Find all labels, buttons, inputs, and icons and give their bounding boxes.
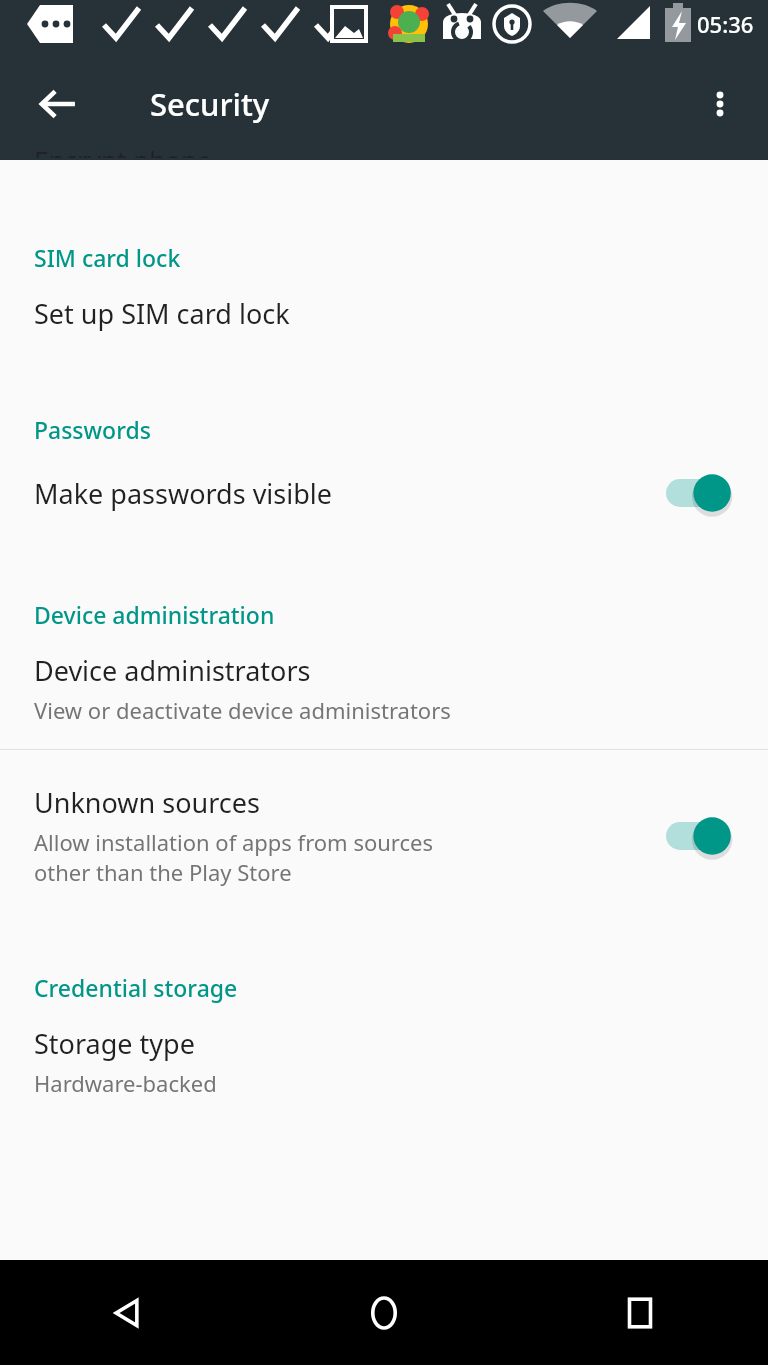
staticText: Storage type [34, 1025, 195, 1062]
button[interactable]: Unknown sources [0, 750, 768, 920]
button[interactable]: Toggle on [666, 469, 740, 517]
button[interactable]: Toggle on [666, 812, 740, 860]
staticText: 05:36 [697, 9, 754, 39]
button[interactable]: Back [0, 1260, 256, 1365]
staticText: Allow installation of apps from sources … [34, 827, 433, 888]
staticText: SIM card lock [34, 242, 768, 273]
button[interactable]: Device administrators [0, 630, 768, 749]
staticText: Security [150, 83, 270, 125]
button[interactable]: Make passwords visible [0, 445, 768, 547]
button[interactable]: Set up SIM card lock [0, 273, 768, 358]
staticText: Make passwords visible [34, 475, 333, 512]
staticText: Device administrators [34, 652, 311, 689]
staticText: Device administration [34, 599, 768, 630]
button[interactable]: Home [256, 1260, 512, 1365]
staticText: View or deactivate device administrators [34, 695, 451, 725]
button[interactable]: Recent apps [512, 1260, 768, 1365]
staticText: Hardware-backed [34, 1068, 217, 1098]
staticText: Set up SIM card lock [34, 295, 290, 332]
staticText: Passwords [34, 414, 768, 445]
button[interactable]: Back [20, 66, 96, 142]
staticText: Encrypt phone [34, 142, 212, 158]
button[interactable]: Storage type [0, 1003, 768, 1120]
button[interactable]: More options [684, 68, 756, 140]
staticText: Credential storage [34, 972, 768, 1003]
staticText: Unknown sources [34, 784, 260, 821]
